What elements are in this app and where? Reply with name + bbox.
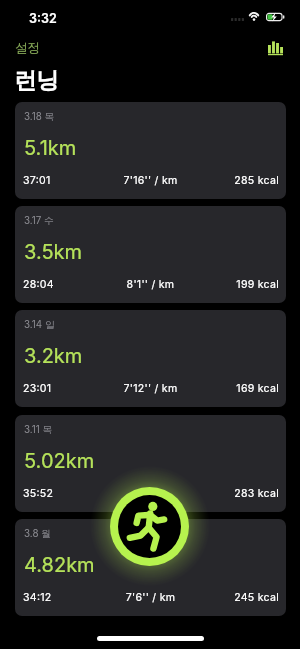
button[interactable]: 3.18 목 [15, 102, 286, 199]
button[interactable]: 3.8 월 [15, 519, 286, 616]
button[interactable]: 3.11 목 [15, 415, 286, 512]
staticText: 런닝 [14, 66, 59, 94]
staticText: 3.2km [24, 344, 83, 368]
staticText: 37:01 [23, 174, 100, 187]
staticText: 23:01 [23, 382, 100, 395]
button[interactable]: Statistics [268, 41, 283, 55]
staticText: 7'6'' / km [100, 591, 201, 604]
staticText: 3.17 수 [24, 215, 54, 227]
staticText: 28:04 [23, 278, 100, 291]
staticText: 3.14 일 [24, 319, 55, 331]
button[interactable]: Start run [110, 487, 189, 566]
staticText: 34:12 [23, 591, 100, 604]
button[interactable]: 설정 [14, 39, 41, 57]
staticText: 설정 [15, 40, 40, 56]
staticText: 4.82km [24, 553, 95, 577]
staticText: 7'16'' / km [100, 174, 201, 187]
staticText: 5.02km [24, 449, 95, 473]
button[interactable]: 3.17 수 [15, 206, 286, 303]
staticText: 199 kcal [201, 278, 279, 291]
staticText: 3.11 목 [24, 424, 53, 436]
staticText: 35:52 [23, 487, 100, 500]
staticText: 3:32 [29, 11, 57, 26]
staticText [100, 487, 201, 500]
staticText: 169 kcal [201, 382, 279, 395]
staticText: 8'1'' / km [100, 278, 201, 291]
staticText: 283 kcal [201, 487, 279, 500]
staticText: 285 kcal [201, 174, 279, 187]
staticText: 245 kcal [201, 591, 279, 604]
staticText: 3.18 목 [24, 111, 55, 123]
staticText: 7'12'' / km [100, 382, 201, 395]
staticText: 5.1km [24, 136, 77, 160]
staticText: 3.5km [24, 240, 83, 264]
button[interactable]: 3.14 일 [15, 310, 286, 407]
staticText: 3.8 월 [24, 528, 52, 540]
